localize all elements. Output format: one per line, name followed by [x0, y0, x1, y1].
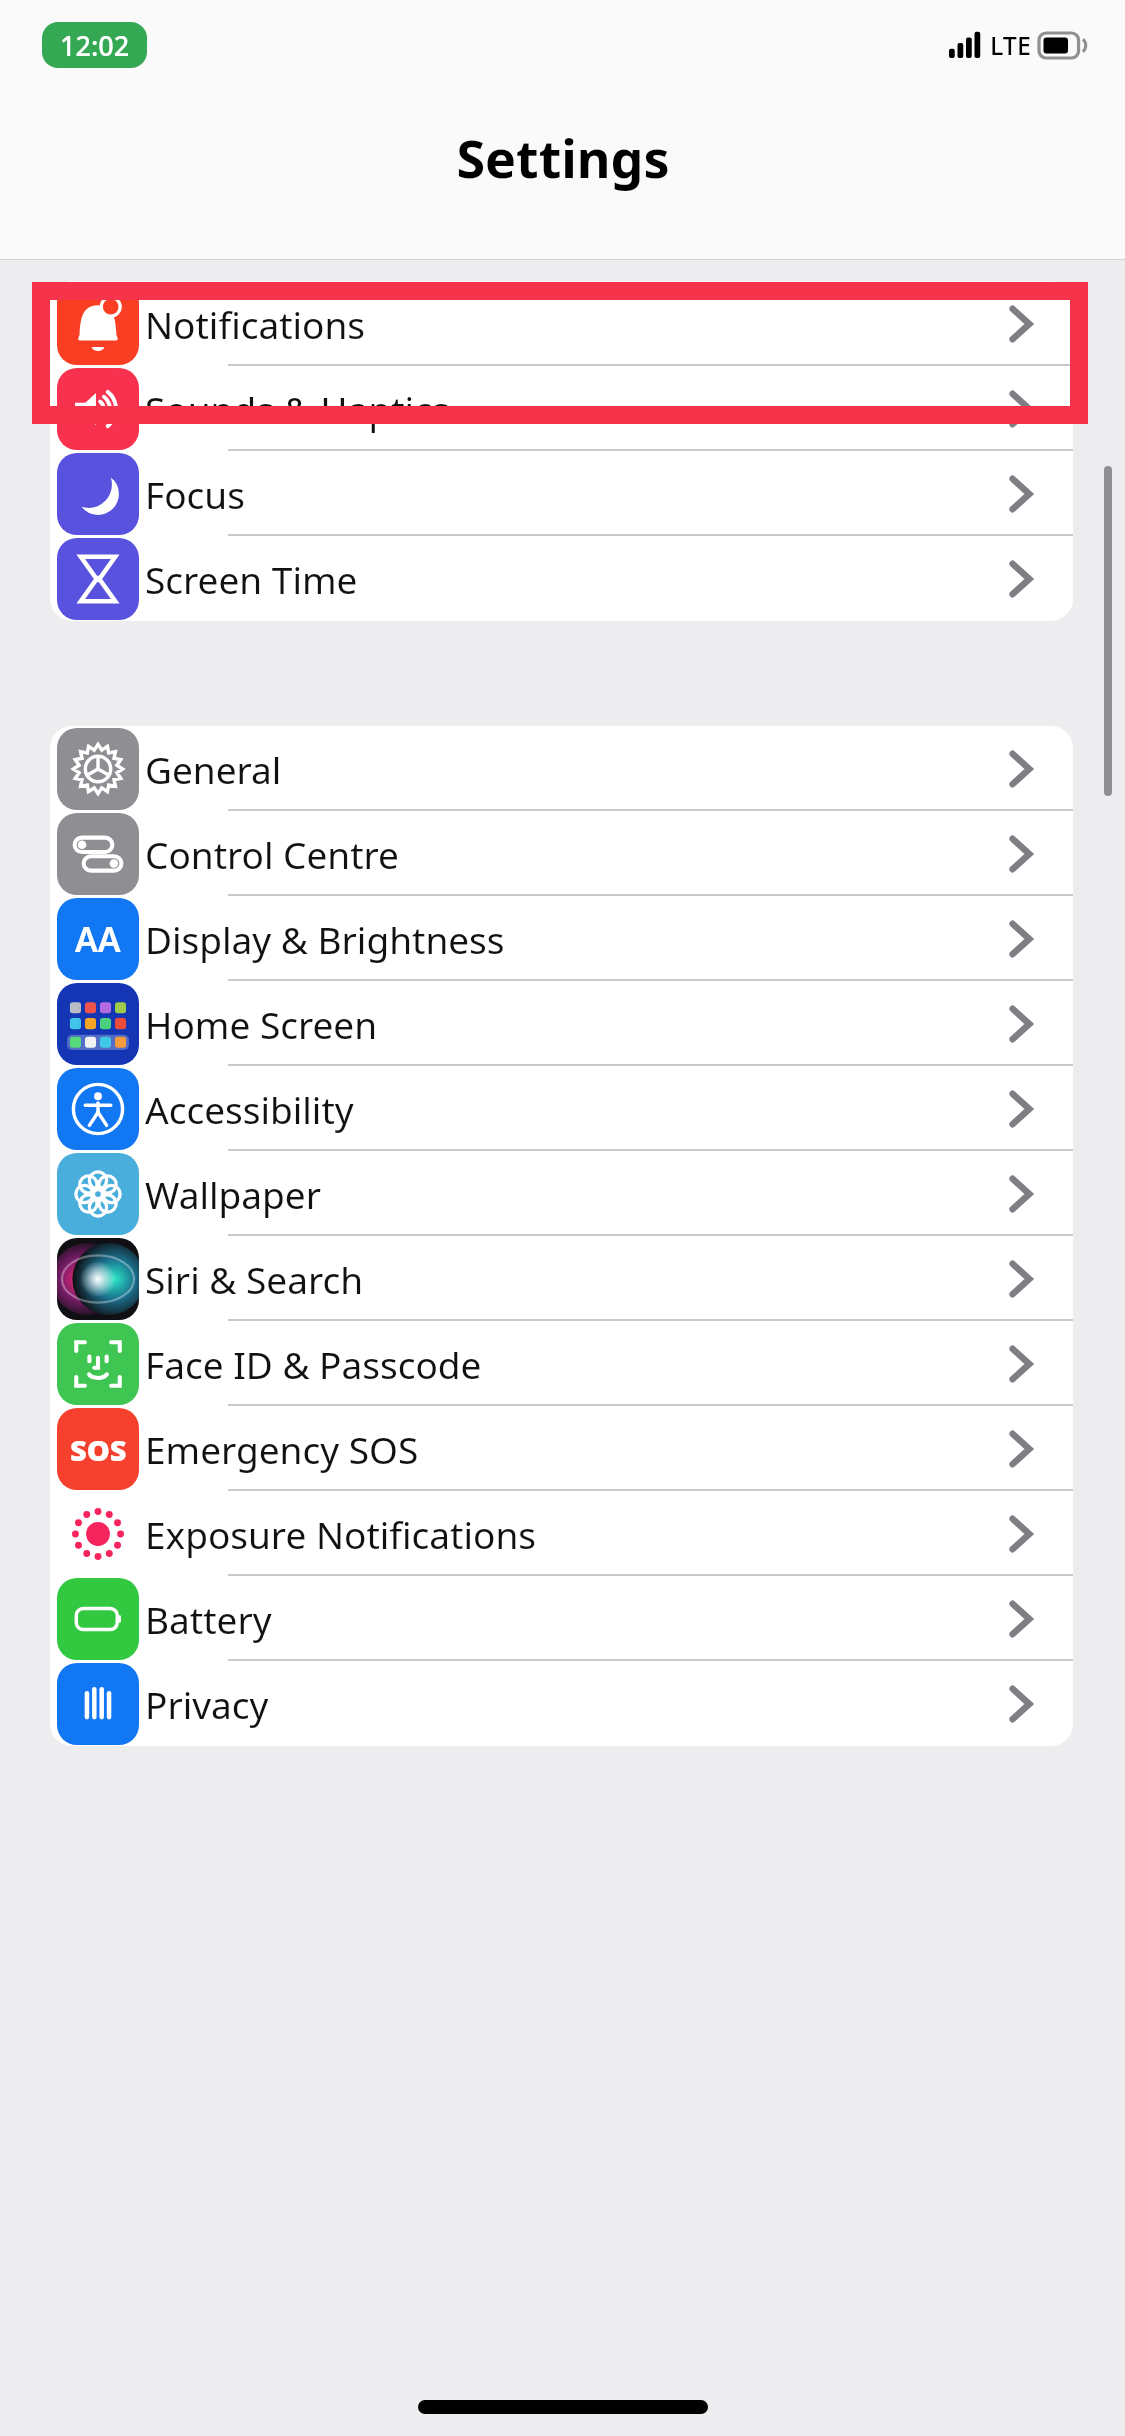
staticText: Display & Brightness	[145, 914, 505, 964]
staticText: Home Screen	[145, 999, 378, 1049]
staticText: 12:02	[60, 27, 130, 64]
button[interactable]: Focus	[50, 451, 1073, 536]
button[interactable]: Home Screen	[50, 981, 1073, 1066]
staticText: Battery	[145, 1594, 272, 1644]
button[interactable]: Accessibility	[50, 1066, 1073, 1151]
button[interactable]: Exposure Notifications	[50, 1491, 1073, 1576]
staticText: Face ID & Passcode	[145, 1339, 482, 1389]
button[interactable]: Sounds & Haptics	[50, 366, 1073, 451]
button[interactable]: Control Centre	[50, 811, 1073, 896]
staticText: SOS	[70, 1430, 127, 1469]
staticText: LTE	[990, 28, 1031, 62]
staticText: General	[145, 744, 282, 794]
staticText: Notifications	[145, 299, 366, 349]
button[interactable]: Notifications	[50, 281, 1073, 366]
button[interactable]: SOS	[50, 1406, 1073, 1491]
staticText: Emergency SOS	[145, 1424, 419, 1474]
staticText: Sounds & Haptics	[145, 384, 450, 434]
button[interactable]: Siri & Search	[50, 1236, 1073, 1321]
button[interactable]: AA	[50, 896, 1073, 981]
staticText: Privacy	[145, 1679, 269, 1729]
staticText: AA	[75, 916, 121, 962]
staticText: Exposure Notifications	[145, 1509, 536, 1559]
staticText: Wallpaper	[145, 1169, 321, 1219]
button[interactable]: Privacy	[50, 1661, 1073, 1746]
staticText: Focus	[145, 469, 245, 519]
button[interactable]: General	[50, 726, 1073, 811]
staticText: Siri & Search	[145, 1254, 364, 1304]
staticText: Settings	[456, 122, 670, 193]
button[interactable]: Battery	[50, 1576, 1073, 1661]
staticText: Control Centre	[145, 829, 399, 879]
button[interactable]: Wallpaper	[50, 1151, 1073, 1236]
staticText: Screen Time	[145, 554, 358, 604]
button[interactable]: Face ID & Passcode	[50, 1321, 1073, 1406]
staticText: Accessibility	[145, 1084, 354, 1134]
button[interactable]: Screen Time	[50, 536, 1073, 621]
